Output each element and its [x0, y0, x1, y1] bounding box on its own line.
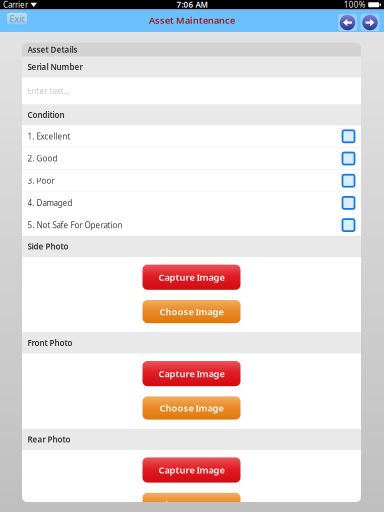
button[interactable]: Capture Image	[142, 457, 240, 483]
button[interactable]: 1. Excellent	[22, 125, 361, 147]
staticText: Capture Image	[158, 367, 224, 380]
staticText: 4. Damaged	[28, 198, 73, 208]
staticText: Capture Image	[158, 464, 224, 476]
staticText: Choose Image	[159, 305, 223, 318]
staticText: Choose Image	[159, 402, 223, 414]
button[interactable]: Choose Image	[142, 300, 240, 323]
staticText: 2. Good	[28, 153, 58, 164]
staticText: Asset Details	[28, 44, 78, 55]
staticText: Rear Photo	[28, 434, 71, 445]
staticText: Choose Image	[159, 498, 223, 511]
staticText: 3. Poor	[28, 175, 55, 186]
button[interactable]: Previous	[338, 14, 357, 31]
staticText: Front Photo	[28, 338, 73, 348]
staticText: Carrier	[3, 0, 28, 10]
staticText: Enter text...	[28, 86, 70, 96]
staticText: Serial Number	[28, 62, 83, 72]
staticText: 1. Excellent	[28, 131, 71, 142]
button[interactable]: Capture Image	[142, 361, 240, 386]
staticText: Condition	[28, 110, 65, 120]
button[interactable]: 4. Damaged	[22, 192, 361, 214]
button[interactable]: Capture Image	[142, 265, 240, 290]
staticText: Exit	[9, 12, 24, 25]
button[interactable]: 3. Poor	[22, 170, 361, 192]
staticText: Capture Image	[158, 271, 224, 283]
staticText: 7:06 AM	[176, 0, 207, 10]
button[interactable]: 5. Not Safe For Operation	[22, 214, 361, 236]
staticText: Asset Maintenance	[149, 14, 235, 26]
button[interactable]: Next	[360, 14, 379, 31]
staticText: Side Photo	[28, 241, 69, 252]
staticText: 5. Not Safe For Operation	[28, 220, 123, 230]
button[interactable]: Choose Image	[142, 493, 240, 512]
button[interactable]: Exit	[7, 9, 27, 32]
button[interactable]: Choose Image	[142, 396, 240, 420]
staticText: 100%	[344, 0, 366, 10]
button[interactable]: 2. Good	[22, 147, 361, 170]
